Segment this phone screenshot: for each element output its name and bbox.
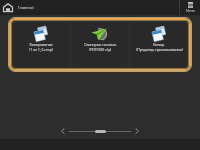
staticText: Копир. bbox=[153, 42, 165, 47]
button[interactable]: Копир. bbox=[131, 22, 187, 67]
staticText: Главный bbox=[18, 5, 34, 10]
button[interactable]: Главный bbox=[0, 0, 38, 15]
staticText: Меню bbox=[186, 9, 195, 13]
button[interactable]: Menu bbox=[180, 0, 200, 15]
button[interactable]: Next page bbox=[131, 125, 143, 137]
button[interactable]: Previous page bbox=[57, 125, 69, 137]
staticText: (PDF/300 т/д) bbox=[89, 47, 111, 52]
staticText: Копирование bbox=[29, 42, 53, 47]
button[interactable]: Сканиров. на комп. bbox=[72, 22, 128, 67]
staticText: Сканиров. на комп. bbox=[84, 42, 117, 47]
staticText: (Предотвр. просвечивания) bbox=[136, 47, 183, 52]
button[interactable]: Копирование bbox=[13, 22, 69, 67]
staticText: (1 из 1; 2-стор) bbox=[29, 47, 53, 52]
